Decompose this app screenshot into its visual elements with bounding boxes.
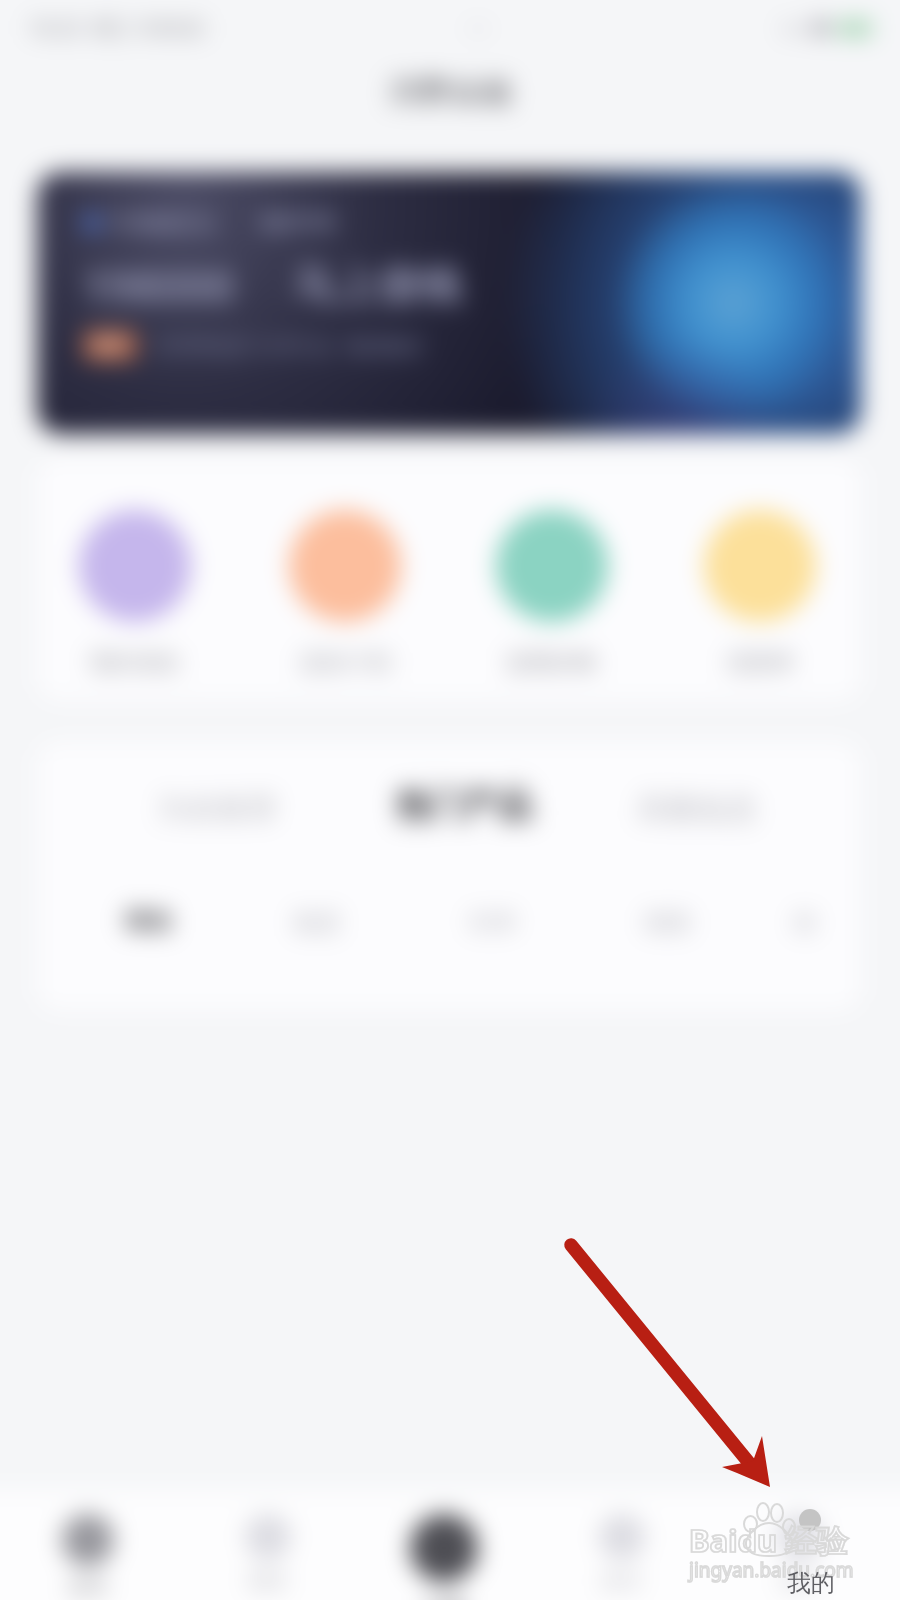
button[interactable]: 额度	[281, 898, 353, 948]
staticText: 198000	[83, 256, 235, 316]
staticText: 马上借钱	[293, 260, 461, 313]
staticText: 消费金融	[388, 72, 512, 111]
staticText: 借钱	[424, 1591, 464, 1600]
other: Annotation arrow	[0, 0, 900, 1600]
staticText: 可用额度(元)	[109, 210, 216, 236]
staticText: 高额低息	[637, 790, 757, 828]
staticText: 新客	[93, 335, 127, 356]
button[interactable]: 热门产品	[382, 772, 546, 839]
staticText: 首页	[68, 1575, 108, 1600]
button[interactable]: 借钱	[392, 1500, 496, 1600]
button[interactable]: 优惠券	[690, 510, 830, 677]
button[interactable]: 为你推荐	[143, 778, 291, 840]
button[interactable]: 提额攻略	[482, 510, 622, 677]
staticText: 日利率低至 0.02% 起 · 随借随还	[155, 333, 424, 359]
button[interactable]: 利率	[457, 898, 529, 948]
button[interactable]: 我的	[748, 1500, 852, 1600]
staticText: 提额攻略	[506, 648, 598, 677]
staticText: 综合	[125, 906, 173, 936]
button[interactable]: 还款计划	[275, 510, 415, 677]
button[interactable]: 期限	[632, 898, 704, 948]
button[interactable]: 高额低息	[623, 778, 771, 840]
button[interactable]: 综合	[113, 896, 185, 946]
staticText: 我的借款	[89, 648, 181, 677]
staticText: 优惠券	[726, 648, 795, 677]
button[interactable]: 账单	[570, 1500, 674, 1600]
button[interactable]: 可用额度 198000 马上借钱	[37, 172, 861, 434]
button[interactable]: 我的借款	[65, 510, 205, 677]
staticText: 为你推荐	[157, 790, 277, 828]
button[interactable]: 首页	[36, 1500, 140, 1600]
staticText: 我的	[780, 1569, 820, 1594]
staticText: 热门产品	[396, 784, 532, 827]
staticText: 额度详情	[260, 211, 336, 235]
button[interactable]: 额度	[216, 1500, 320, 1600]
